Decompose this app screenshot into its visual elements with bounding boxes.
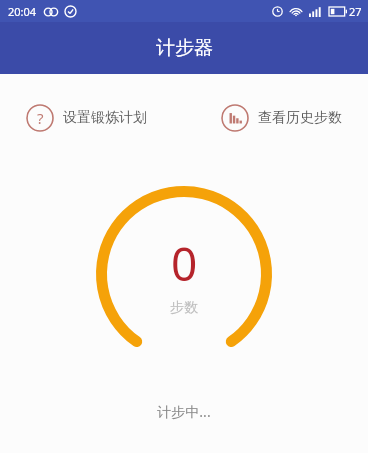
staticText: 设置锻炼计划	[63, 109, 147, 127]
staticText: 计步器	[156, 36, 213, 60]
staticText: 20:04	[8, 4, 37, 19]
other: 设置锻炼计划	[26, 104, 54, 132]
staticText: 查看历史步数	[258, 109, 342, 127]
staticText: 0	[171, 232, 198, 295]
button[interactable]: 设置锻炼计划	[26, 100, 147, 136]
staticText: 27	[349, 4, 362, 19]
staticText: ?	[37, 108, 44, 128]
staticText: 计步中...	[0, 402, 368, 421]
button[interactable]: 查看历史步数	[221, 100, 342, 136]
staticText: 步数	[170, 299, 198, 317]
other: 查看历史步数	[221, 104, 249, 132]
